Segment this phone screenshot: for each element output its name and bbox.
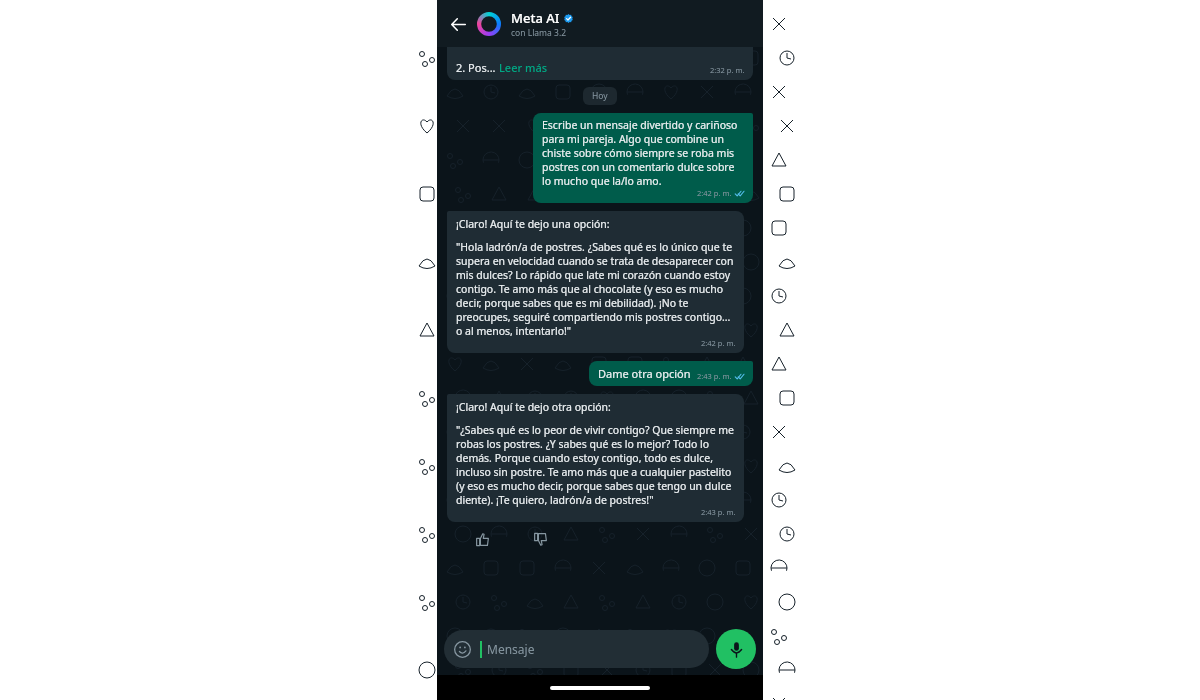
staticText: ¡Claro! Aquí te dejo otra opción: [456, 400, 611, 414]
staticText: Escribe un mensaje divertido y cariñoso … [542, 118, 745, 188]
staticText: Meta AI [511, 9, 560, 27]
button[interactable]: Escribe un mensaje divertido y cariñoso … [533, 113, 753, 203]
staticText: Dame otra opción [598, 366, 691, 381]
staticText: "¿Sabes qué es lo peor de vivir contigo?… [456, 423, 736, 507]
staticText: ¡Claro! Aquí te dejo una opción: [456, 217, 610, 231]
button[interactable]: Dislike [529, 528, 551, 550]
button[interactable]: Mensaje [444, 630, 709, 668]
button[interactable]: ¡Claro! Aquí te dejo otra opción: [447, 394, 744, 522]
button[interactable]: Voice message [716, 629, 756, 669]
button[interactable]: Back [443, 9, 473, 39]
button[interactable]: 2. Pos... [447, 47, 753, 80]
staticText: "Hola ladrón/a de postres. ¿Sabes qué es… [456, 240, 736, 338]
staticText: Hoy [592, 90, 608, 102]
staticText: con Llama 3.2 [511, 27, 567, 39]
staticText: 2:42 p. m. [697, 188, 732, 198]
staticText: Leer más [499, 60, 548, 75]
staticText: 2:42 p. m. [701, 338, 736, 348]
button[interactable]: Dame otra opción [589, 361, 753, 386]
staticText: Mensaje [487, 641, 535, 657]
button[interactable]: ¡Claro! Aquí te dejo una opción: [447, 211, 744, 353]
staticText: 2. Pos... [456, 60, 499, 75]
staticText: 2:43 p. m. [701, 507, 736, 517]
button[interactable]: Like [471, 528, 493, 550]
staticText: 2:32 p. m. [710, 65, 745, 75]
staticText: 2:43 p. m. [697, 371, 732, 381]
